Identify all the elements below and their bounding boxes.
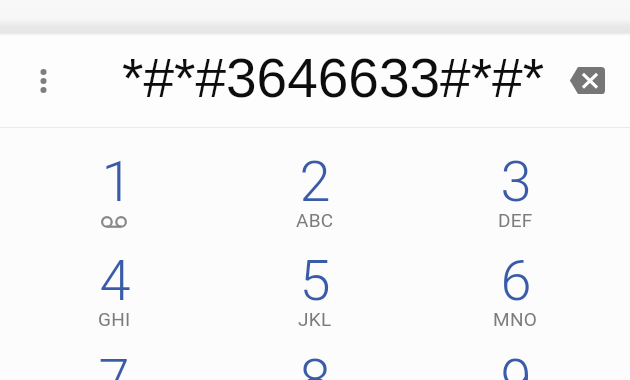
- staticText: 4: [99, 248, 131, 314]
- button[interactable]: 3: [415, 149, 616, 248]
- button[interactable]: 9: [415, 347, 616, 380]
- staticText: GHI: [98, 308, 131, 330]
- staticText: JKL: [298, 308, 332, 330]
- staticText: 8: [299, 347, 331, 380]
- button[interactable]: 2: [214, 149, 415, 248]
- button[interactable]: 7: [14, 347, 214, 380]
- staticText: 5: [299, 248, 331, 314]
- staticText: 7: [98, 347, 130, 380]
- button[interactable]: 4: [14, 248, 214, 347]
- staticText: ABC: [296, 209, 334, 231]
- button[interactable]: More options: [27, 65, 59, 97]
- button[interactable]: 1: [14, 149, 214, 248]
- staticText: 2: [299, 149, 331, 215]
- staticText: 6: [500, 248, 532, 314]
- button[interactable]: 5: [214, 248, 415, 347]
- button[interactable]: 6: [415, 248, 616, 347]
- staticText: DEF: [498, 209, 533, 231]
- button[interactable]: Backspace: [565, 58, 609, 102]
- button[interactable]: 8: [214, 347, 415, 380]
- staticText: *#*#3646633#*#*: [122, 47, 545, 108]
- staticText: MNO: [493, 308, 538, 330]
- staticText: 9: [500, 347, 532, 380]
- staticText: 1: [101, 149, 133, 215]
- staticText: 3: [500, 149, 532, 215]
